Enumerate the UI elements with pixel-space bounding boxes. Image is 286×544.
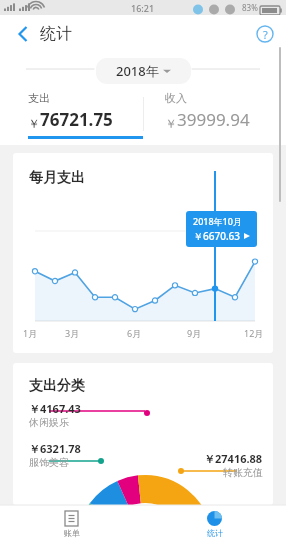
button[interactable]: Help bbox=[252, 21, 278, 47]
staticText: 12月 bbox=[244, 327, 264, 339]
staticText: 支出 bbox=[28, 91, 50, 105]
staticText: 每月支出 bbox=[29, 169, 85, 187]
staticText: 39999.94 bbox=[177, 108, 250, 131]
staticText: 2018年 bbox=[116, 62, 159, 80]
staticText: 2018年10月 bbox=[193, 215, 242, 227]
staticText: 统计 bbox=[207, 528, 223, 538]
staticText: ￥6321.78 bbox=[29, 441, 81, 456]
staticText: 收入 bbox=[165, 91, 187, 105]
staticText: 6月 bbox=[127, 327, 142, 339]
staticText: 统计 bbox=[40, 24, 72, 44]
button[interactable]: 2018年 bbox=[96, 58, 191, 84]
button[interactable]: 账单 bbox=[0, 505, 143, 544]
staticText: 1月 bbox=[23, 327, 38, 339]
staticText: 休闲娱乐 bbox=[29, 416, 69, 429]
staticText: ￥ bbox=[165, 116, 177, 131]
staticText: 83% bbox=[242, 2, 258, 13]
staticText: 76721.75 bbox=[40, 108, 113, 131]
staticText: 转账充值 bbox=[223, 466, 263, 479]
staticText: ￥ bbox=[28, 116, 40, 131]
button[interactable]: 支出 bbox=[0, 91, 143, 145]
staticText: 服饰美容 bbox=[29, 456, 69, 469]
staticText: ? bbox=[263, 27, 268, 42]
staticText: 支出分类 bbox=[29, 377, 85, 395]
staticText: 16:21 bbox=[131, 2, 155, 14]
staticText: ￥4167.43 bbox=[29, 401, 81, 416]
button[interactable]: 收入 bbox=[143, 91, 286, 145]
button[interactable]: 支出分类 bbox=[13, 363, 273, 505]
button[interactable]: 统计 bbox=[143, 505, 286, 544]
staticText: 9月 bbox=[187, 327, 202, 339]
staticText: 3月 bbox=[65, 327, 80, 339]
button[interactable]: 每月支出 bbox=[13, 153, 273, 353]
staticText: 账单 bbox=[64, 528, 80, 538]
staticText: ￥6670.63 bbox=[193, 229, 241, 243]
button[interactable]: 2018年10月 bbox=[186, 211, 257, 247]
button[interactable]: Back bbox=[6, 19, 36, 49]
staticText: ￥27416.88 bbox=[204, 451, 263, 466]
